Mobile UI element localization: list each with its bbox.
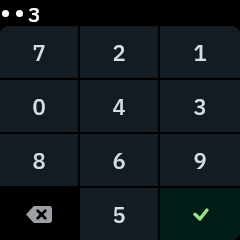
button[interactable]: 1 [160, 26, 240, 78]
button[interactable]: Backspace [0, 188, 78, 240]
staticText: 5 [112, 199, 126, 232]
button[interactable]: 4 [80, 80, 158, 132]
staticText: 3 [193, 91, 207, 124]
button[interactable]: 6 [80, 134, 158, 186]
staticText: 2 [112, 37, 126, 70]
button[interactable]: 9 [160, 134, 240, 186]
staticText: 8 [32, 145, 46, 178]
staticText: 4 [112, 91, 126, 124]
button[interactable]: 2 [80, 26, 158, 78]
staticText: 9 [193, 145, 207, 178]
button[interactable]: 8 [0, 134, 78, 186]
button[interactable]: 5 [80, 188, 158, 240]
staticText: 1 [193, 37, 207, 70]
staticText: 0 [32, 91, 46, 124]
button[interactable]: 0 [0, 80, 78, 132]
staticText: 6 [112, 145, 126, 178]
button[interactable]: 7 [0, 26, 78, 78]
button[interactable]: Confirm [160, 188, 240, 240]
staticText: 7 [32, 37, 46, 70]
staticText: 3 [28, 0, 41, 25]
button[interactable]: 3 [160, 80, 240, 132]
